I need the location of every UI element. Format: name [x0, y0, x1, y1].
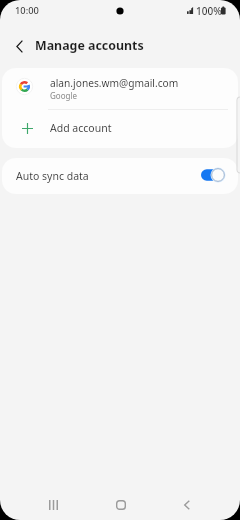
- staticText: Add account: [50, 121, 112, 135]
- button[interactable]: Recent apps: [33, 485, 73, 520]
- button[interactable]: Navigate up: [7, 34, 31, 58]
- button[interactable]: Add account: [2, 110, 238, 148]
- button[interactable]: alan.jones.wm@gmail.com: [2, 68, 238, 109]
- staticText: 100%: [196, 4, 222, 18]
- staticText: 10:00: [15, 4, 39, 17]
- staticText: alan.jones.wm@gmail.com: [50, 76, 179, 90]
- button[interactable]: Auto sync data: [2, 158, 238, 194]
- staticText: Auto sync data: [16, 169, 89, 183]
- button[interactable]: Home: [101, 485, 141, 520]
- staticText: Google: [50, 90, 77, 101]
- button[interactable]: Back: [167, 485, 207, 520]
- staticText: Manage accounts: [35, 37, 144, 54]
